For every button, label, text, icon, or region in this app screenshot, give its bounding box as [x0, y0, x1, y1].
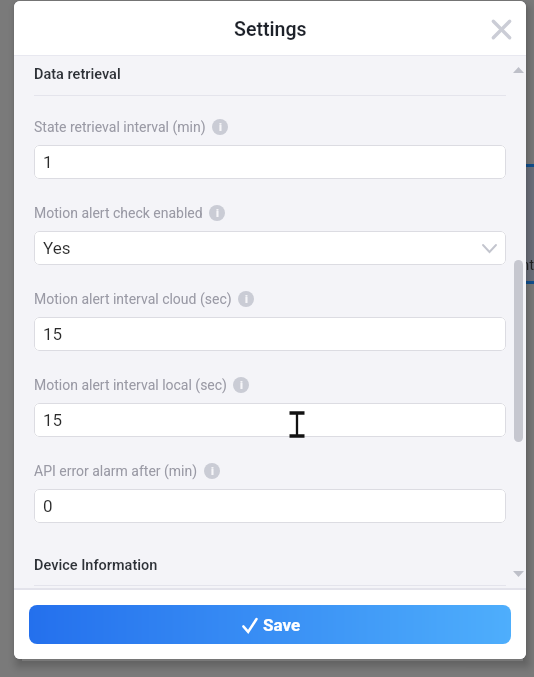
button[interactable]: 1 — [34, 145, 506, 179]
button[interactable]: 15 — [34, 403, 506, 437]
staticText: i — [211, 465, 214, 478]
staticText: Data retrieval — [34, 66, 121, 83]
staticText: Yes — [43, 238, 71, 258]
button[interactable]: Save — [29, 605, 511, 644]
staticText: i — [219, 121, 222, 134]
staticText: 15 — [43, 410, 63, 430]
staticText: State retrieval interval (min) — [34, 119, 206, 135]
staticText: Motion alert check enabled — [34, 205, 203, 221]
button[interactable]: Scroll up — [510, 61, 526, 78]
button[interactable]: 15 — [34, 317, 506, 351]
button[interactable]: Yes — [34, 231, 506, 265]
staticText: Motion alert interval cloud (sec) — [34, 291, 232, 307]
button[interactable]: Scroll down — [510, 565, 526, 582]
staticText: 0 — [43, 496, 53, 516]
staticText: 1 — [43, 152, 53, 172]
staticText: nt — [521, 256, 534, 274]
staticText: Save — [263, 615, 301, 635]
staticText: API error alarm after (min) — [34, 463, 198, 479]
staticText: Device Information — [34, 557, 158, 574]
button[interactable]: Close — [484, 12, 518, 46]
staticText: 15 — [43, 324, 63, 344]
staticText: i — [245, 293, 248, 306]
staticText: Settings — [234, 18, 307, 41]
button[interactable]: 0 — [34, 489, 506, 523]
staticText: i — [216, 207, 219, 220]
staticText: Motion alert interval local (sec) — [34, 377, 227, 393]
staticText: i — [240, 379, 243, 392]
